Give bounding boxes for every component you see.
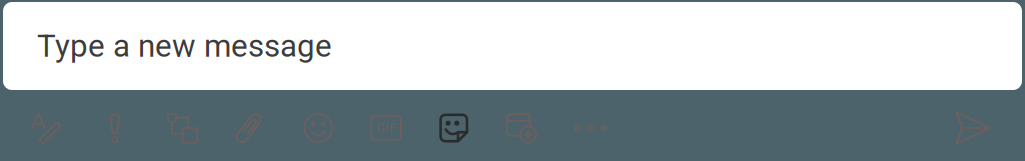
button[interactable]: Insert template <box>156 99 210 157</box>
button[interactable]: Type a new message <box>3 2 1022 90</box>
button[interactable]: Send <box>946 99 1000 157</box>
staticText: Type a new message <box>37 28 332 64</box>
button[interactable]: Format text <box>20 99 74 157</box>
button[interactable]: GIF <box>359 99 413 157</box>
button[interactable]: Mark as important <box>88 99 142 157</box>
staticText: GIF <box>376 120 396 136</box>
button[interactable]: Stickers <box>427 99 481 157</box>
button[interactable]: More options <box>562 99 616 157</box>
button[interactable]: Emoji <box>291 99 345 157</box>
button[interactable]: Attach a file <box>223 99 277 157</box>
button[interactable]: Add an app <box>495 99 549 157</box>
